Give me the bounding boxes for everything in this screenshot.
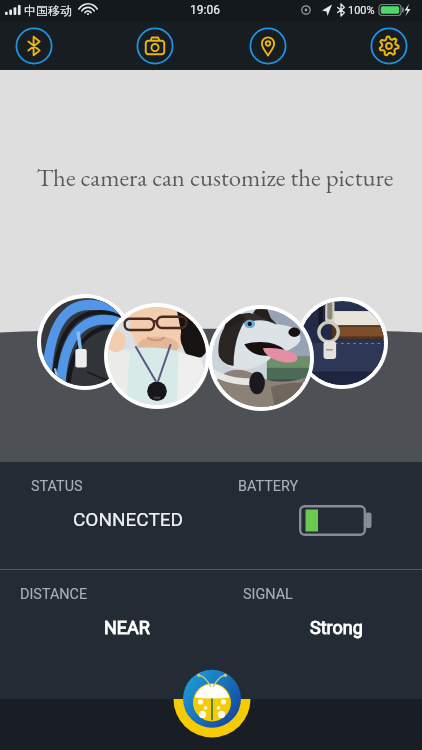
button[interactable]: Camera <box>131 22 179 70</box>
staticText: STATUS <box>31 478 83 495</box>
staticText: DISTANCE <box>20 586 88 603</box>
button[interactable]: Home <box>173 660 251 740</box>
staticText: Strong <box>310 617 363 638</box>
staticText: 100% <box>348 4 375 17</box>
staticText: CONNECTED <box>73 508 184 530</box>
staticText: SIGNAL <box>243 586 293 603</box>
staticText: BATTERY <box>238 478 299 495</box>
staticText: The camera can customize the picture <box>4 161 422 193</box>
staticText: NEAR <box>104 617 150 638</box>
staticText: 中国移动 <box>24 3 72 18</box>
staticText: 19:06 <box>190 3 220 17</box>
button[interactable]: Location <box>244 22 292 70</box>
button[interactable]: Bluetooth <box>10 22 58 70</box>
button[interactable]: Settings <box>365 22 413 70</box>
